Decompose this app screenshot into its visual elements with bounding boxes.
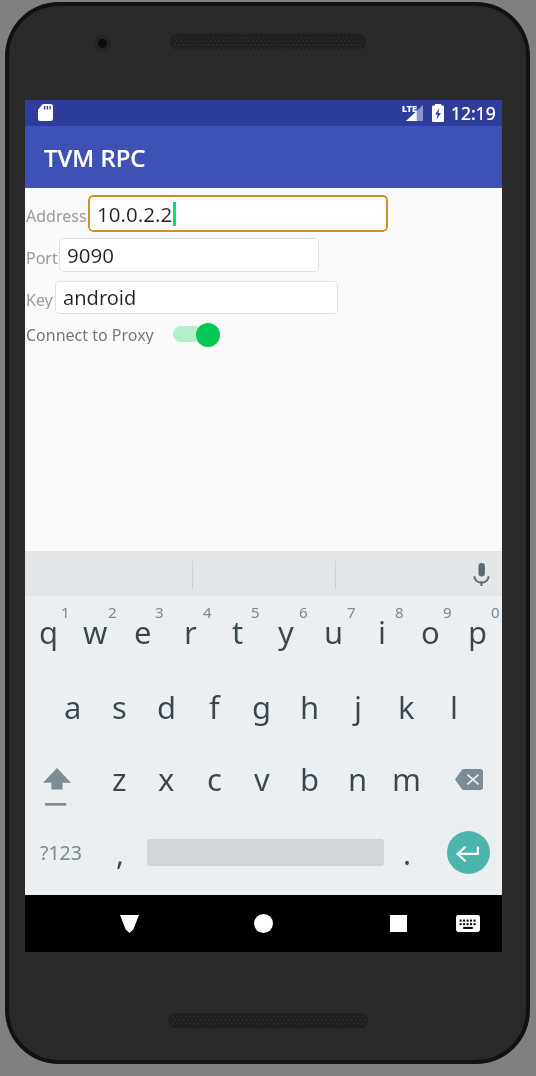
button[interactable]: TVM RPC bbox=[25, 126, 502, 188]
staticText: v bbox=[254, 758, 270, 800]
staticText: 7 bbox=[347, 602, 356, 622]
staticText: 3 bbox=[155, 602, 164, 622]
staticText: LTE bbox=[402, 102, 418, 114]
staticText: c bbox=[207, 758, 222, 800]
button[interactable]: Backspace bbox=[430, 742, 502, 810]
staticText: Key bbox=[26, 289, 53, 309]
staticText: 1 bbox=[61, 602, 70, 622]
button[interactable]: 2 bbox=[72, 596, 119, 673]
button[interactable]: b bbox=[286, 742, 334, 810]
staticText: 8 bbox=[395, 602, 404, 622]
button[interactable]: Home bbox=[233, 895, 293, 952]
button[interactable]: 6 bbox=[262, 596, 310, 673]
staticText: h bbox=[300, 686, 320, 728]
button[interactable]: 9 bbox=[406, 596, 454, 673]
staticText: l bbox=[450, 686, 458, 728]
button[interactable]: 10.0.2.2 bbox=[88, 195, 388, 232]
staticText: 2 bbox=[108, 602, 117, 622]
staticText: a bbox=[64, 686, 82, 728]
button[interactable]: j bbox=[334, 673, 382, 742]
staticText: i bbox=[378, 611, 386, 653]
staticText: w bbox=[83, 611, 108, 653]
button[interactable]: n bbox=[334, 742, 382, 810]
staticText: z bbox=[112, 758, 127, 800]
button[interactable]: c bbox=[190, 742, 238, 810]
button[interactable]: Keyboard bbox=[438, 895, 498, 952]
button[interactable]: k bbox=[382, 673, 430, 742]
staticText: b bbox=[300, 758, 320, 800]
button[interactable]: g bbox=[238, 673, 286, 742]
button[interactable]: v bbox=[238, 742, 286, 810]
staticText: m bbox=[392, 758, 421, 800]
button[interactable]: 3 bbox=[119, 596, 166, 673]
button[interactable]: Connect to Proxy bbox=[26, 324, 154, 344]
button[interactable]: 1 bbox=[25, 596, 72, 673]
button[interactable]: l bbox=[430, 673, 478, 742]
staticText: n bbox=[348, 758, 368, 800]
staticText: x bbox=[158, 758, 175, 800]
staticText: 0 bbox=[491, 602, 500, 622]
button[interactable] bbox=[143, 810, 388, 895]
button[interactable]: , bbox=[97, 810, 143, 895]
staticText: u bbox=[324, 611, 344, 653]
button[interactable]: a bbox=[49, 673, 96, 742]
staticText: , bbox=[116, 833, 125, 874]
staticText: 5 bbox=[251, 602, 260, 622]
staticText: android bbox=[63, 284, 137, 311]
button[interactable]: d bbox=[143, 673, 190, 742]
button[interactable]: Shift bbox=[25, 742, 96, 810]
staticText: o bbox=[421, 611, 440, 653]
staticText: p bbox=[468, 611, 488, 653]
button[interactable]: s bbox=[96, 673, 143, 742]
staticText: k bbox=[398, 686, 415, 728]
button[interactable]: Recents bbox=[368, 895, 428, 952]
staticText: f bbox=[209, 686, 220, 728]
staticText: q bbox=[39, 611, 59, 653]
button[interactable]: Back bbox=[99, 895, 159, 952]
staticText: 10.0.2.2 bbox=[97, 200, 173, 228]
button[interactable]: 4 bbox=[166, 596, 214, 673]
staticText: 9090 bbox=[67, 241, 114, 269]
staticText: Port bbox=[26, 247, 58, 267]
staticText: Connect to Proxy bbox=[26, 324, 154, 344]
button[interactable]: 9090 bbox=[59, 238, 319, 272]
button[interactable]: Voice input bbox=[461, 551, 501, 596]
staticText: TVM RPC bbox=[44, 141, 146, 174]
staticText: Address bbox=[26, 205, 87, 225]
staticText: . bbox=[403, 833, 412, 874]
staticText: r bbox=[184, 611, 197, 653]
button[interactable]: z bbox=[96, 742, 143, 810]
staticText: g bbox=[252, 686, 272, 728]
staticText: s bbox=[112, 686, 127, 728]
button[interactable]: 8 bbox=[358, 596, 406, 673]
button[interactable]: x bbox=[143, 742, 190, 810]
button[interactable]: h bbox=[286, 673, 334, 742]
button[interactable]: m bbox=[382, 742, 430, 810]
staticText: 6 bbox=[299, 602, 308, 622]
button[interactable]: android bbox=[55, 281, 338, 314]
button[interactable]: 5 bbox=[214, 596, 262, 673]
staticText: ?123 bbox=[40, 839, 82, 866]
staticText: d bbox=[157, 686, 177, 728]
staticText: e bbox=[134, 611, 152, 653]
staticText: t bbox=[232, 611, 244, 653]
button[interactable]: . bbox=[389, 810, 425, 895]
staticText: y bbox=[278, 611, 294, 653]
button[interactable]: Enter bbox=[428, 810, 502, 895]
button[interactable]: f bbox=[190, 673, 238, 742]
staticText: 9 bbox=[443, 602, 452, 622]
staticText: 12:19 bbox=[451, 101, 496, 125]
button[interactable]: 7 bbox=[310, 596, 358, 673]
staticText: 4 bbox=[203, 602, 212, 622]
staticText: j bbox=[354, 686, 362, 728]
button[interactable]: ?123 bbox=[25, 810, 96, 895]
button[interactable]: 0 bbox=[454, 596, 502, 673]
